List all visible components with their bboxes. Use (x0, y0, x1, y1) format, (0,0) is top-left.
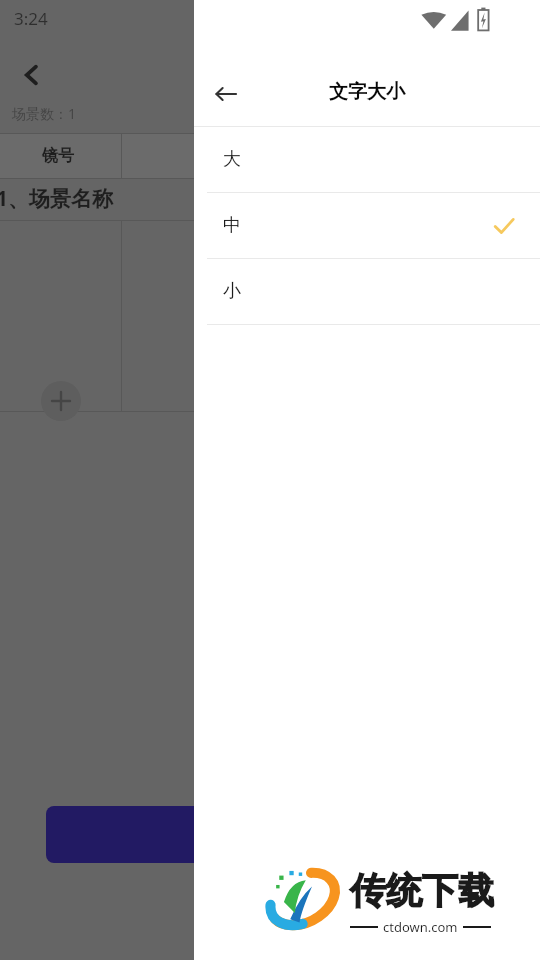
staticText: 3:24 (14, 7, 48, 30)
button[interactable] (46, 806, 246, 863)
button[interactable]: 小 (194, 259, 540, 324)
staticText: 传统下载 (350, 868, 494, 913)
staticText: ctdown.com (383, 918, 458, 936)
button[interactable]: Add (41, 381, 81, 421)
staticText: 镜号 (42, 146, 74, 166)
staticText: 场景数：1 (12, 104, 77, 123)
staticText: 1、场景名称 (0, 184, 114, 213)
button[interactable]: Back (206, 74, 246, 114)
button[interactable]: 大 (194, 127, 540, 192)
staticText: 中 (223, 214, 241, 237)
staticText: 小 (223, 280, 241, 303)
button[interactable]: 中 (194, 193, 540, 258)
staticText: 大 (223, 148, 241, 171)
button[interactable]: Back (12, 55, 52, 95)
staticText: 文字大小 (194, 80, 540, 104)
